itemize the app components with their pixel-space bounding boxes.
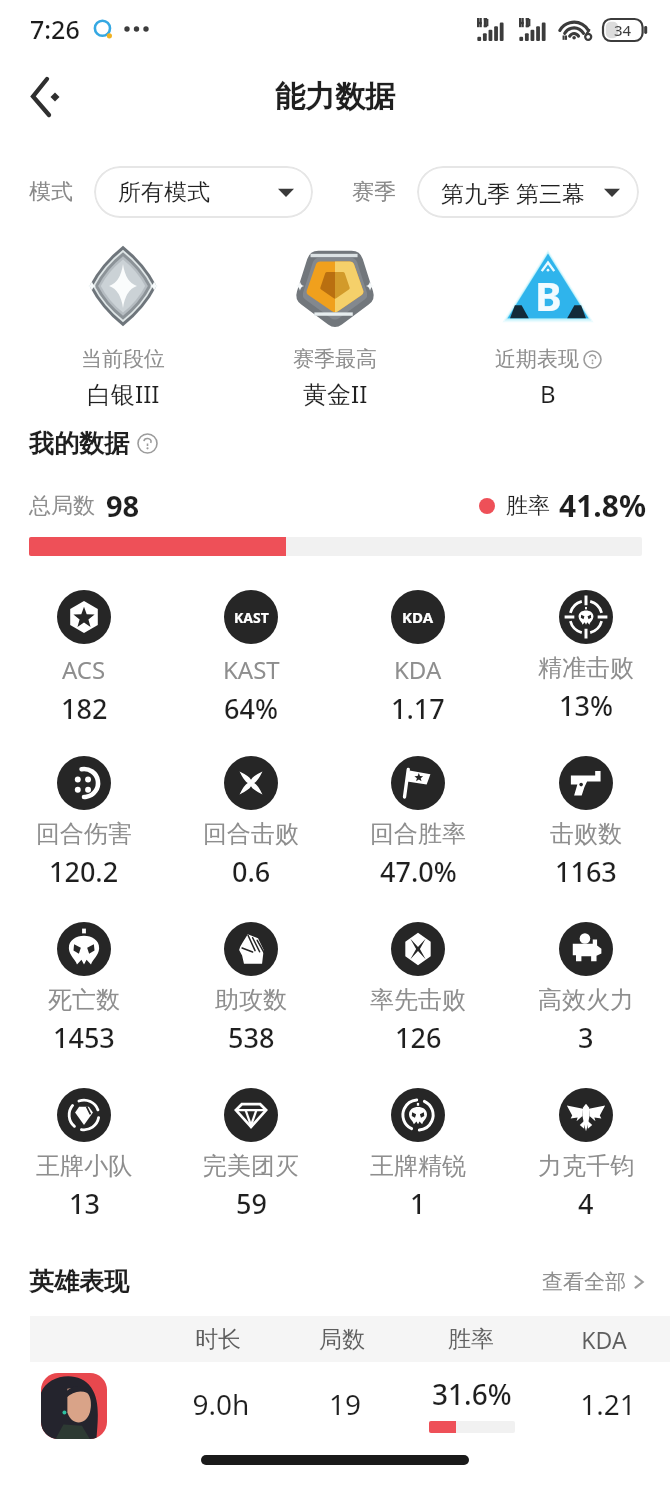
staticText: 精准击败 xyxy=(538,653,634,683)
staticText: 模式 xyxy=(29,178,73,206)
staticText: 完美团灭 xyxy=(203,1151,299,1181)
staticText: 力克千钧 xyxy=(538,1151,634,1181)
staticText: 1453 xyxy=(53,1019,115,1056)
button[interactable]: 击败数 xyxy=(506,756,666,890)
staticText: 查看全部 xyxy=(542,1269,626,1295)
staticText: 回合伤害 xyxy=(36,819,132,849)
staticText: 34 xyxy=(614,20,632,40)
staticText: 英雄表现 xyxy=(29,1266,129,1297)
button[interactable]: 当前段位 xyxy=(33,238,213,410)
staticText: 回合击败 xyxy=(203,819,299,849)
staticText: 高效火力 xyxy=(538,985,634,1015)
button[interactable]: B xyxy=(458,238,638,410)
button[interactable]: KAST xyxy=(171,590,331,727)
staticText: 3 xyxy=(578,1019,594,1056)
staticText: 9.0h xyxy=(161,1385,281,1423)
staticText: B xyxy=(535,268,562,322)
staticText: 538 xyxy=(228,1019,275,1056)
button[interactable]: 助攻数 xyxy=(171,922,331,1056)
staticText: 赛季 xyxy=(352,178,396,206)
staticText: 王牌小队 xyxy=(36,1151,132,1181)
staticText: KAST xyxy=(223,653,280,686)
staticText: 率先击败 xyxy=(370,985,466,1015)
button[interactable]: 精准击败 xyxy=(506,590,666,724)
button[interactable]: 高效火力 xyxy=(506,922,666,1056)
button[interactable]: 死亡数 xyxy=(4,922,164,1056)
staticText: 182 xyxy=(61,690,108,727)
staticText: B xyxy=(540,377,556,410)
button[interactable]: 回合胜率 xyxy=(338,756,498,890)
button[interactable]: ACS xyxy=(4,590,164,727)
staticText: 126 xyxy=(395,1019,442,1056)
button[interactable]: 回合击败 xyxy=(171,756,331,890)
staticText: 1.21 xyxy=(548,1385,668,1423)
staticText: 能力数据 xyxy=(275,78,395,116)
staticText: 白银III xyxy=(87,377,160,410)
staticText: 31.6% xyxy=(432,1375,512,1413)
button[interactable]: 完美团灭 xyxy=(171,1088,331,1222)
button[interactable]: KDA xyxy=(338,590,498,727)
staticText: 1.17 xyxy=(391,690,445,727)
staticText: KDA xyxy=(394,653,442,686)
staticText: 98 xyxy=(106,486,140,525)
staticText: 助攻数 xyxy=(215,985,287,1015)
staticText: 120.2 xyxy=(49,853,119,890)
button[interactable]: Agent portrait xyxy=(41,1373,107,1439)
staticText: 13% xyxy=(559,687,613,724)
button[interactable]: 回合伤害 xyxy=(4,756,164,890)
staticText: KDA xyxy=(402,607,434,627)
staticText: 胜率 xyxy=(506,492,550,520)
staticText: 王牌精锐 xyxy=(370,1151,466,1181)
staticText: 总局数 xyxy=(29,492,95,520)
staticText: 第九季 第三幕 xyxy=(441,177,585,208)
staticText: 回合胜率 xyxy=(370,819,466,849)
button[interactable]: 力克千钧 xyxy=(506,1088,666,1222)
staticText: 近期表现 xyxy=(495,346,579,372)
button[interactable]: Agent portrait xyxy=(0,1362,670,1446)
staticText: 1163 xyxy=(555,853,617,890)
staticText: 死亡数 xyxy=(48,985,120,1015)
staticText: 黄金II xyxy=(303,377,368,410)
staticText: 0.6 xyxy=(232,853,271,890)
staticText: 4 xyxy=(578,1185,594,1222)
button[interactable]: Back xyxy=(12,66,74,128)
staticText: 局数 xyxy=(282,1325,402,1354)
staticText: 7:26 xyxy=(30,12,80,46)
button[interactable]: 率先击败 xyxy=(338,922,498,1056)
button[interactable]: 查看全部 xyxy=(542,1269,646,1295)
staticText: 64% xyxy=(224,690,278,727)
staticText: 时长 xyxy=(158,1325,278,1354)
staticText: 1 xyxy=(410,1185,426,1222)
button[interactable]: 王牌小队 xyxy=(4,1088,164,1222)
staticText: 击败数 xyxy=(550,819,622,849)
button[interactable]: 赛季最高 xyxy=(245,238,425,410)
button[interactable]: 所有模式 xyxy=(94,166,313,218)
staticText: 19 xyxy=(285,1385,405,1423)
staticText: 当前段位 xyxy=(81,346,165,372)
staticText: 41.8% xyxy=(559,485,646,526)
button[interactable]: 第九季 第三幕 xyxy=(417,166,639,218)
staticText: ACS xyxy=(62,653,106,686)
staticText: 59 xyxy=(236,1185,267,1222)
staticText: 所有模式 xyxy=(118,178,210,207)
staticText: 胜率 xyxy=(411,1325,531,1354)
staticText: 赛季最高 xyxy=(293,346,377,372)
staticText: KAST xyxy=(234,608,269,627)
staticText: 我的数据 xyxy=(29,428,129,459)
staticText: KDA xyxy=(544,1324,664,1355)
staticText: 13 xyxy=(69,1185,100,1222)
button[interactable]: 王牌精锐 xyxy=(338,1088,498,1222)
staticText: 47.0% xyxy=(380,853,457,890)
